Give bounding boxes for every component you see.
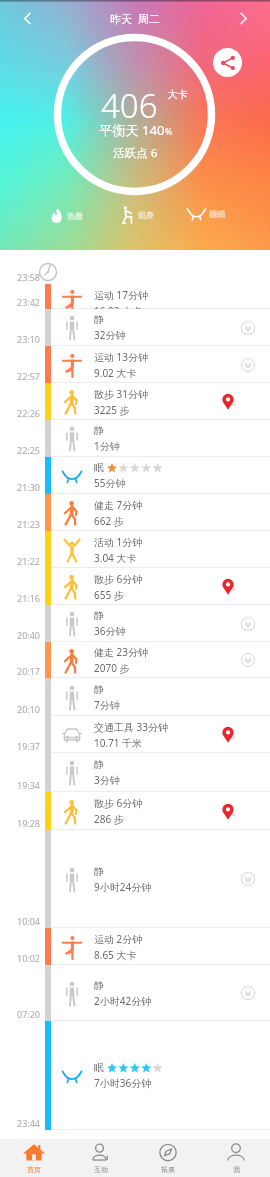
- staticText: 21:23: [17, 518, 41, 530]
- staticText: 静: [94, 313, 104, 326]
- button[interactable]: 首页: [0, 1139, 67, 1177]
- staticText: 我: [233, 1165, 240, 1174]
- button[interactable]: 19:37: [0, 716, 270, 753]
- button[interactable]: Expand: [241, 617, 255, 631]
- staticText: 23:58: [17, 271, 41, 283]
- staticText: 23:44: [17, 1117, 41, 1129]
- staticText: 健走 7分钟: [94, 498, 143, 512]
- button[interactable]: Expand: [241, 872, 255, 886]
- button[interactable]: 23:10: [0, 309, 270, 346]
- staticText: 3.04 大卡: [94, 551, 137, 565]
- staticText: 2070 步: [94, 661, 130, 675]
- staticText: 662 步: [94, 514, 124, 528]
- staticText: 互动: [94, 1165, 108, 1174]
- button[interactable]: 07:20: [0, 965, 270, 1021]
- staticText: 655 步: [94, 588, 124, 602]
- staticText: 55分钟: [94, 476, 126, 490]
- staticText: 16.02 大卡: [94, 304, 143, 309]
- staticText: 406: [101, 83, 158, 128]
- staticText: 拓展: [161, 1165, 175, 1174]
- staticText: 散步 6分钟: [94, 572, 143, 586]
- staticText: 散步 31分钟: [94, 387, 149, 401]
- staticText: 20:10: [17, 703, 41, 715]
- staticText: 交通工具 33分钟: [94, 720, 169, 734]
- staticText: 36分钟: [94, 624, 126, 638]
- button[interactable]: 20:40: [0, 605, 270, 642]
- staticText: 22:26: [17, 407, 41, 419]
- staticText: 运动 13分钟: [94, 350, 149, 364]
- button[interactable]: Share: [213, 48, 242, 77]
- staticText: 8.65 大卡: [94, 948, 137, 962]
- button[interactable]: 互动: [67, 1139, 134, 1177]
- button[interactable]: 21:22: [0, 531, 270, 568]
- staticText: 10.71 千米: [94, 736, 143, 750]
- staticText: 23:42: [17, 296, 41, 308]
- staticText: 运动 2分钟: [94, 932, 143, 946]
- staticText: 静: [94, 609, 104, 622]
- staticText: 2小时42分钟: [94, 994, 152, 1008]
- staticText: 3分钟: [94, 773, 120, 787]
- staticText: 3225 步: [94, 403, 130, 417]
- staticText: %: [165, 125, 173, 137]
- staticText: 23:10: [17, 333, 41, 345]
- button[interactable]: 19:28: [0, 792, 270, 830]
- button[interactable]: 热量: [49, 205, 83, 226]
- staticText: 静: [94, 758, 104, 771]
- staticText: 静: [94, 683, 104, 696]
- staticText: 热量: [67, 211, 83, 221]
- button[interactable]: Expand: [241, 321, 255, 335]
- button[interactable]: 拓展: [134, 1139, 202, 1177]
- staticText: 10:02: [17, 952, 41, 964]
- staticText: 9小时24分钟: [94, 880, 152, 894]
- staticText: 22:25: [17, 444, 41, 456]
- staticText: 睡眠: [209, 209, 225, 219]
- staticText: 32分钟: [94, 328, 126, 342]
- button[interactable]: Expand: [241, 358, 255, 372]
- button[interactable]: 22:26: [0, 383, 270, 420]
- staticText: 静: [94, 865, 104, 878]
- button[interactable]: 20:17: [0, 642, 270, 678]
- button[interactable]: Expand: [241, 986, 255, 1000]
- button[interactable]: 睡眠: [187, 204, 225, 224]
- staticText: 昨天 周二: [110, 11, 160, 26]
- button[interactable]: Expand: [241, 653, 255, 667]
- staticText: 健走 23分钟: [94, 645, 149, 659]
- staticText: 20:17: [17, 665, 41, 677]
- staticText: 07:20: [17, 1008, 41, 1020]
- staticText: 静: [94, 979, 104, 992]
- button[interactable]: 10:04: [0, 830, 270, 928]
- staticText: 活动 1分钟: [94, 535, 143, 549]
- staticText: 运动 17分钟: [94, 288, 149, 302]
- button[interactable]: 我: [202, 1139, 270, 1177]
- staticText: 21:22: [17, 555, 41, 567]
- button[interactable]: 22:57: [0, 346, 270, 383]
- staticText: 9.02 大卡: [94, 366, 137, 380]
- button[interactable]: 10:02: [0, 928, 270, 965]
- staticText: 19:37: [17, 740, 41, 752]
- button[interactable]: Previous day: [12, 3, 42, 33]
- staticText: 21:16: [17, 592, 41, 604]
- button[interactable]: 23:42: [0, 284, 270, 309]
- button[interactable]: Next day: [228, 3, 258, 33]
- staticText: 286 步: [94, 812, 124, 826]
- staticText: 7分钟: [94, 698, 120, 712]
- staticText: 散步 6分钟: [94, 796, 143, 810]
- staticText: 20:40: [17, 629, 41, 641]
- staticText: 1分钟: [94, 439, 120, 453]
- staticText: 眠: [94, 461, 104, 474]
- button[interactable]: 19:34: [0, 753, 270, 792]
- staticText: 大卡: [167, 88, 188, 101]
- staticText: 起身: [138, 210, 154, 220]
- button[interactable]: 21:30: [0, 457, 270, 494]
- staticText: 21:30: [17, 481, 41, 493]
- staticText: 10:04: [17, 915, 41, 927]
- staticText: 静: [94, 424, 104, 437]
- button[interactable]: 20:10: [0, 678, 270, 716]
- button[interactable]: 21:16: [0, 568, 270, 605]
- button[interactable]: 22:25: [0, 420, 270, 457]
- staticText: 7小时36分钟: [94, 1076, 152, 1090]
- button[interactable]: 起身: [120, 203, 154, 227]
- button[interactable]: 23:44: [0, 1021, 270, 1130]
- staticText: 19:34: [17, 779, 41, 791]
- button[interactable]: 21:23: [0, 494, 270, 531]
